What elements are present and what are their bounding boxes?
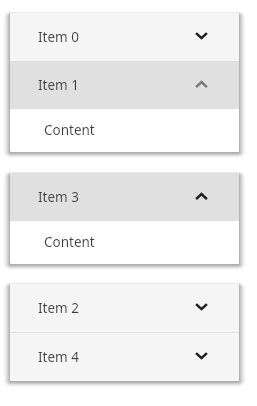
button[interactable]: Item 0, expand [10, 13, 239, 61]
staticText: Item 4 [38, 348, 79, 366]
button[interactable]: Item 4, expand [10, 333, 239, 381]
button[interactable]: Item 2, expand [10, 284, 239, 332]
staticText: Content [44, 121, 95, 139]
button[interactable]: Item 1, collapse [10, 61, 239, 109]
staticText: Item 2 [38, 299, 79, 317]
staticText: Item 1 [38, 76, 79, 94]
button[interactable]: Item 3, collapse [10, 173, 239, 221]
staticText: Content [44, 233, 95, 251]
staticText: Item 0 [38, 28, 79, 46]
staticText: Item 3 [38, 188, 79, 206]
